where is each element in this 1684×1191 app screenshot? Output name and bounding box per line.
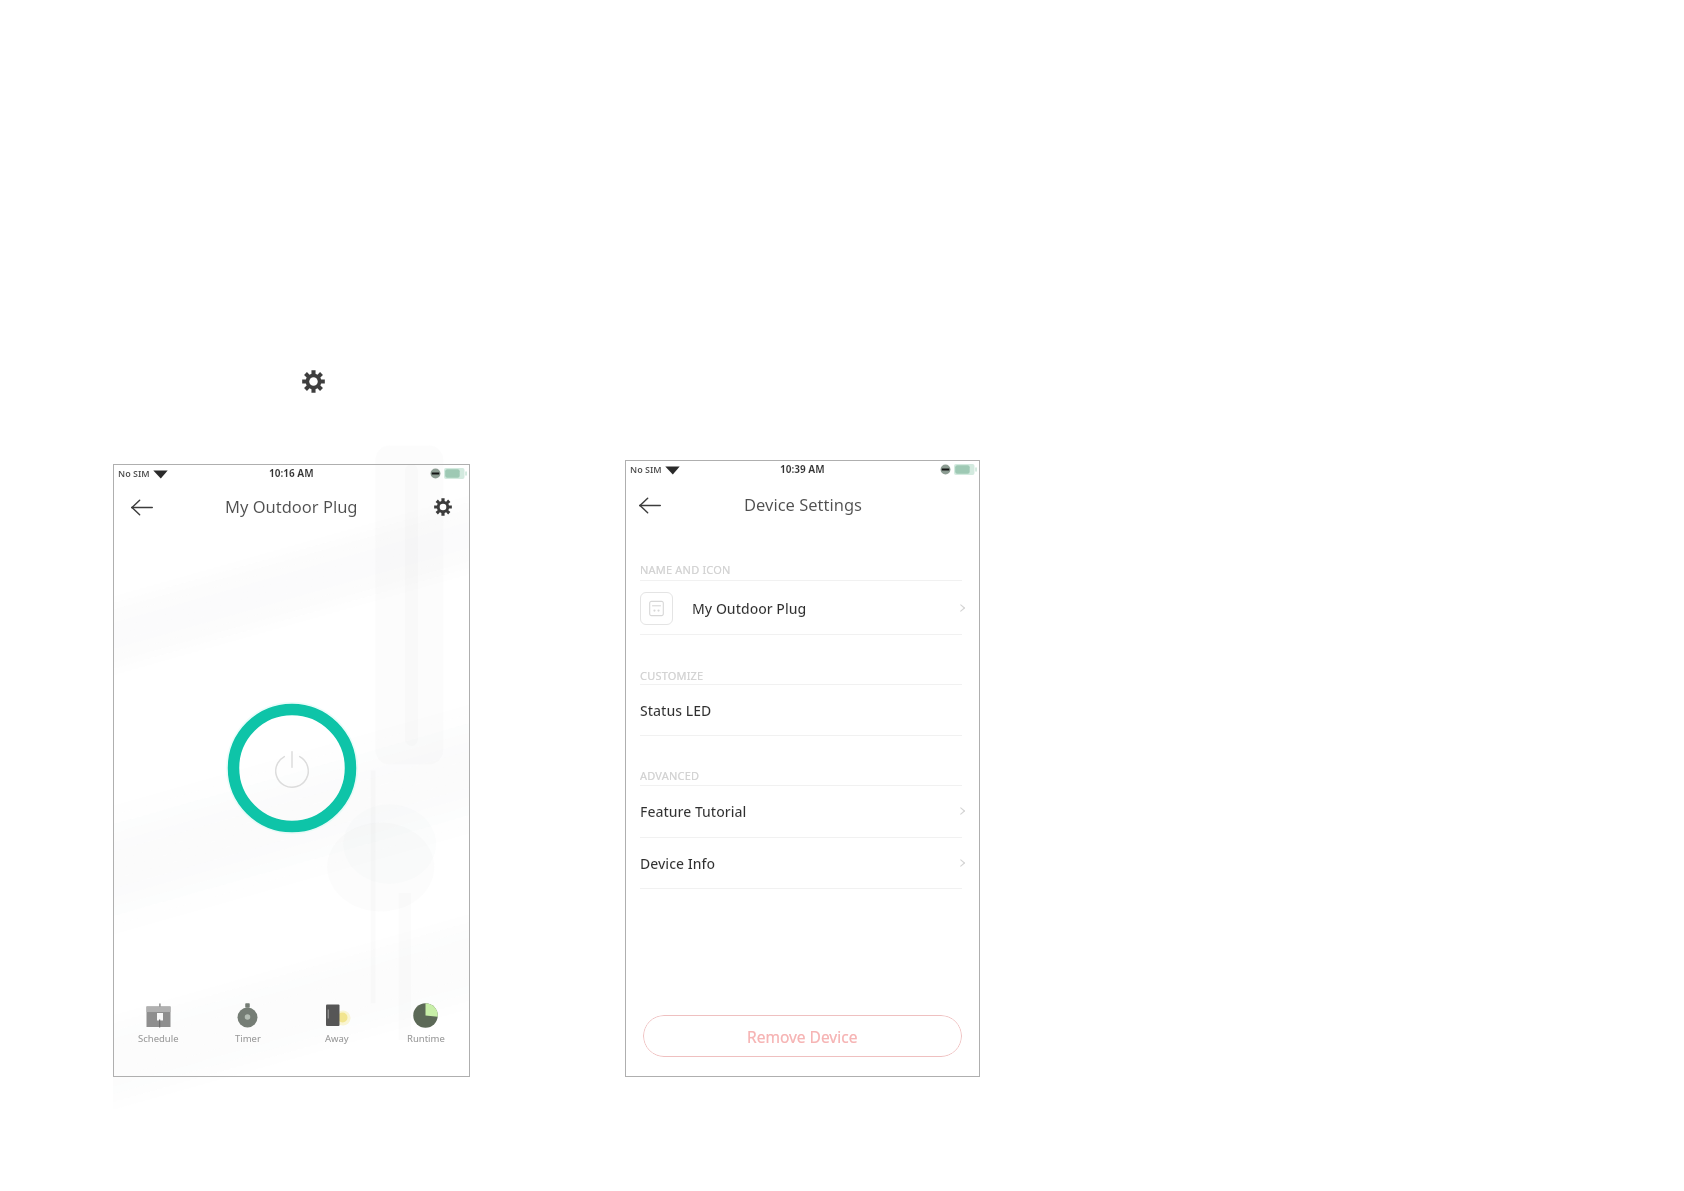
- button[interactable]: Away: [292, 1003, 381, 1045]
- button[interactable]: Back: [129, 494, 155, 520]
- button[interactable]: Device Info: [625, 838, 980, 888]
- button[interactable]: Power: [226, 702, 358, 834]
- staticText: Feature Tutorial: [640, 802, 747, 821]
- button[interactable]: Feature Tutorial: [625, 786, 980, 836]
- button[interactable]: My Outdoor Plug: [625, 582, 980, 634]
- staticText: No SIM: [630, 463, 662, 475]
- button[interactable]: Schedule: [113, 1003, 203, 1045]
- staticText: Timer: [235, 1032, 261, 1045]
- button[interactable]: Device settings: [431, 495, 455, 519]
- staticText: Schedule: [138, 1032, 179, 1045]
- staticText: Status LED: [640, 701, 712, 720]
- staticText: 10:39 AM: [780, 462, 825, 476]
- staticText: My Outdoor Plug: [225, 495, 358, 517]
- staticText: Runtime: [407, 1032, 445, 1045]
- staticText: My Outdoor Plug: [692, 599, 807, 618]
- staticText: Remove Device: [747, 1026, 858, 1047]
- staticText: NAME AND ICON: [640, 562, 731, 576]
- button[interactable]: Timer: [203, 1003, 292, 1045]
- staticText: ADVANCED: [640, 768, 700, 782]
- button[interactable]: Settings: [299, 367, 327, 395]
- button[interactable]: Status LED: [625, 685, 980, 735]
- staticText: Away: [325, 1032, 349, 1045]
- button[interactable]: Remove Device: [643, 1015, 962, 1057]
- staticText: 10:16 AM: [269, 466, 314, 480]
- staticText: CUSTOMIZE: [640, 668, 704, 682]
- button[interactable]: Back: [637, 492, 663, 518]
- staticText: Device Settings: [744, 493, 862, 515]
- staticText: No SIM: [118, 467, 150, 479]
- staticText: Device Info: [640, 854, 715, 873]
- button[interactable]: Runtime: [381, 1003, 470, 1045]
